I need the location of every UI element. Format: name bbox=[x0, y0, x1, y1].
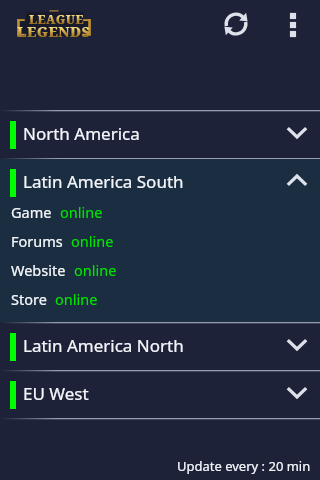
staticText: Latin America North bbox=[23, 334, 184, 357]
staticText: LEAGUE bbox=[29, 11, 84, 27]
button[interactable]: North America bbox=[0, 111, 320, 158]
staticText: online bbox=[60, 202, 103, 222]
staticText: Latin America South bbox=[23, 170, 184, 193]
button[interactable]: Website bbox=[0, 260, 320, 289]
staticText: Forums bbox=[11, 231, 63, 251]
staticText: Update every : 20 min bbox=[177, 457, 311, 475]
button[interactable]: Store bbox=[0, 289, 320, 317]
button[interactable]: Forums bbox=[0, 231, 320, 260]
button[interactable]: Refresh bbox=[214, 2, 258, 46]
button[interactable]: Latin America North bbox=[0, 323, 320, 370]
staticText: online bbox=[71, 231, 114, 251]
staticText: EU West bbox=[23, 382, 89, 405]
staticText: online bbox=[55, 289, 98, 309]
button[interactable]: Latin America South bbox=[0, 159, 320, 206]
button[interactable]: More options bbox=[276, 3, 309, 47]
staticText: Game bbox=[11, 202, 52, 222]
staticText: Website bbox=[11, 260, 66, 280]
staticText: Store bbox=[11, 289, 47, 309]
staticText: LEGENDS bbox=[17, 22, 91, 41]
staticText: North America bbox=[23, 122, 140, 145]
staticText: online bbox=[74, 260, 117, 280]
button[interactable]: Game bbox=[0, 202, 320, 231]
button[interactable]: EU West bbox=[0, 371, 320, 418]
